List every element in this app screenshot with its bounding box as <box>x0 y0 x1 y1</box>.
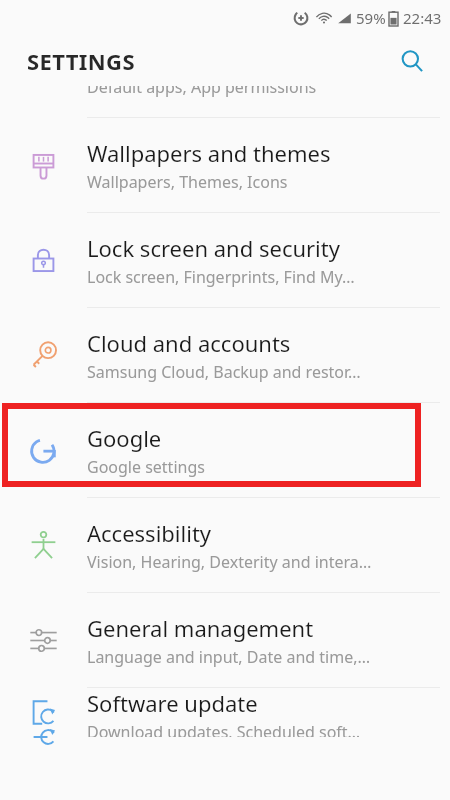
staticText: Download updates, Scheduled soft… <box>87 721 361 737</box>
staticText: Cloud and accounts <box>87 328 291 358</box>
button[interactable]: Software update <box>0 688 450 737</box>
button[interactable]: Wallpapers and themes <box>0 118 450 213</box>
staticText: Vision, Hearing, Dexterity and intera… <box>87 551 372 573</box>
staticText: Language and input, Date and time,… <box>87 646 371 668</box>
button[interactable]: Default apps <box>0 86 450 118</box>
staticText: Google settings <box>87 456 205 478</box>
staticText: Wallpapers and themes <box>87 138 331 168</box>
staticText: SETTINGS <box>27 46 135 76</box>
staticText: Lock screen and security <box>87 233 340 263</box>
staticText: Wallpapers, Themes, Icons <box>87 171 288 193</box>
button[interactable]: Lock screen and security <box>0 213 450 308</box>
staticText: Google <box>87 423 162 453</box>
staticText: Default apps, App permissions <box>87 86 317 98</box>
button[interactable]: Google <box>0 403 450 498</box>
staticText: Lock screen, Fingerprints, Find My… <box>87 266 355 288</box>
button[interactable]: General management <box>0 593 450 688</box>
staticText: 22:43 <box>403 8 442 28</box>
staticText: Software update <box>87 688 258 718</box>
staticText: 59% <box>356 8 386 28</box>
button[interactable]: Accessibility <box>0 498 450 593</box>
button[interactable]: Search <box>392 41 432 81</box>
staticText: General management <box>87 613 314 643</box>
staticText: Samsung Cloud, Backup and restor… <box>87 361 361 383</box>
button[interactable]: Cloud and accounts <box>0 308 450 403</box>
staticText: Accessibility <box>87 518 212 548</box>
